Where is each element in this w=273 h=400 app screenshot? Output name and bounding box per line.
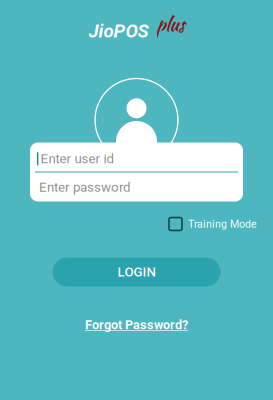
- button[interactable]: LOGIN: [52, 257, 220, 286]
- staticText: Training Mode: [188, 218, 257, 230]
- button[interactable]: Forgot Password?: [81, 314, 192, 336]
- staticText: Enter user id: [40, 151, 114, 167]
- staticText: Forgot Password?: [85, 318, 188, 332]
- staticText: LOGIN: [117, 264, 155, 280]
- staticText: plus: [156, 10, 184, 38]
- staticText: JioPOS: [88, 20, 148, 42]
- staticText: Enter password: [39, 179, 131, 195]
- button[interactable]: Training Mode: [169, 217, 257, 230]
